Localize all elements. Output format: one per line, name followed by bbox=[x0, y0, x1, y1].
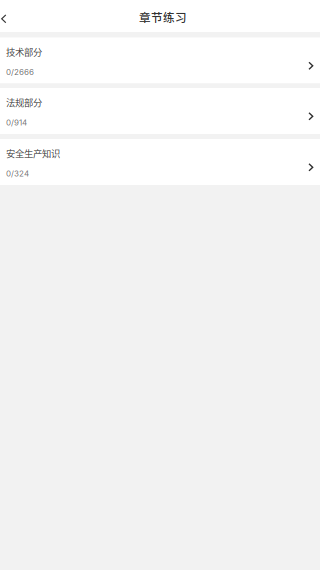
staticText: 技术部分 bbox=[6, 45, 42, 58]
button[interactable]: 0/2666 bbox=[0, 37, 320, 83]
staticText: 安全生产知识 bbox=[6, 146, 60, 160]
button[interactable]: 0/324 bbox=[0, 139, 320, 185]
button[interactable]: Back bbox=[0, 0, 24, 32]
staticText: 章节练习 bbox=[139, 9, 187, 25]
staticText: 0/2666 bbox=[6, 67, 34, 77]
staticText: 法规部分 bbox=[6, 95, 42, 109]
staticText: 0/914 bbox=[6, 118, 27, 127]
button[interactable]: 0/914 bbox=[0, 88, 320, 134]
staticText: 0/324 bbox=[6, 169, 29, 178]
